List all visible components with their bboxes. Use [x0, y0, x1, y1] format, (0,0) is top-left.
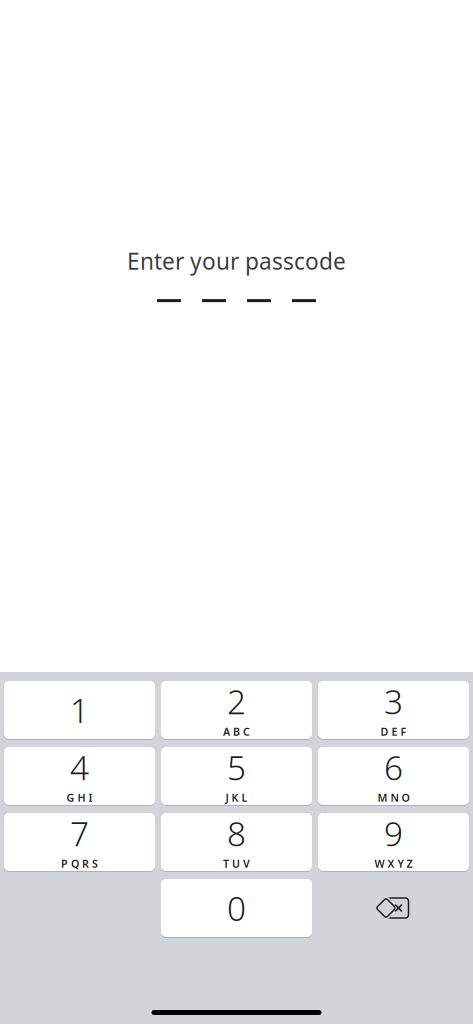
staticText: 0 [227, 886, 246, 930]
staticText: J K L [225, 790, 247, 805]
button[interactable]: 8 [161, 812, 312, 872]
button[interactable]: 4 [4, 746, 155, 806]
staticText: 3 [384, 679, 403, 724]
button[interactable]: 0 [161, 878, 312, 938]
staticText: D E F [380, 724, 406, 739]
button[interactable]: 9 [318, 812, 469, 872]
staticText: 2 [227, 679, 246, 724]
staticText: 5 [227, 745, 246, 790]
staticText: 6 [384, 745, 403, 790]
button[interactable]: 5 [161, 746, 312, 806]
button[interactable]: 1 [4, 680, 155, 740]
button[interactable]: 3 [318, 680, 469, 740]
staticText: T U V [223, 856, 250, 871]
staticText: A B C [223, 724, 250, 739]
staticText: W X Y Z [374, 856, 412, 871]
staticText: 9 [384, 811, 403, 856]
staticText: M N O [377, 790, 409, 805]
staticText: 1 [70, 688, 89, 732]
button[interactable]: Delete [318, 878, 469, 938]
staticText: 8 [227, 811, 246, 856]
button[interactable]: 6 [318, 746, 469, 806]
button[interactable]: 7 [4, 812, 155, 872]
button[interactable]: 2 [161, 680, 312, 740]
staticText: 4 [70, 745, 89, 790]
staticText: 7 [70, 811, 89, 856]
staticText: Enter your passcode [127, 246, 346, 276]
staticText: G H I [66, 790, 92, 805]
staticText: P Q R S [61, 856, 98, 871]
